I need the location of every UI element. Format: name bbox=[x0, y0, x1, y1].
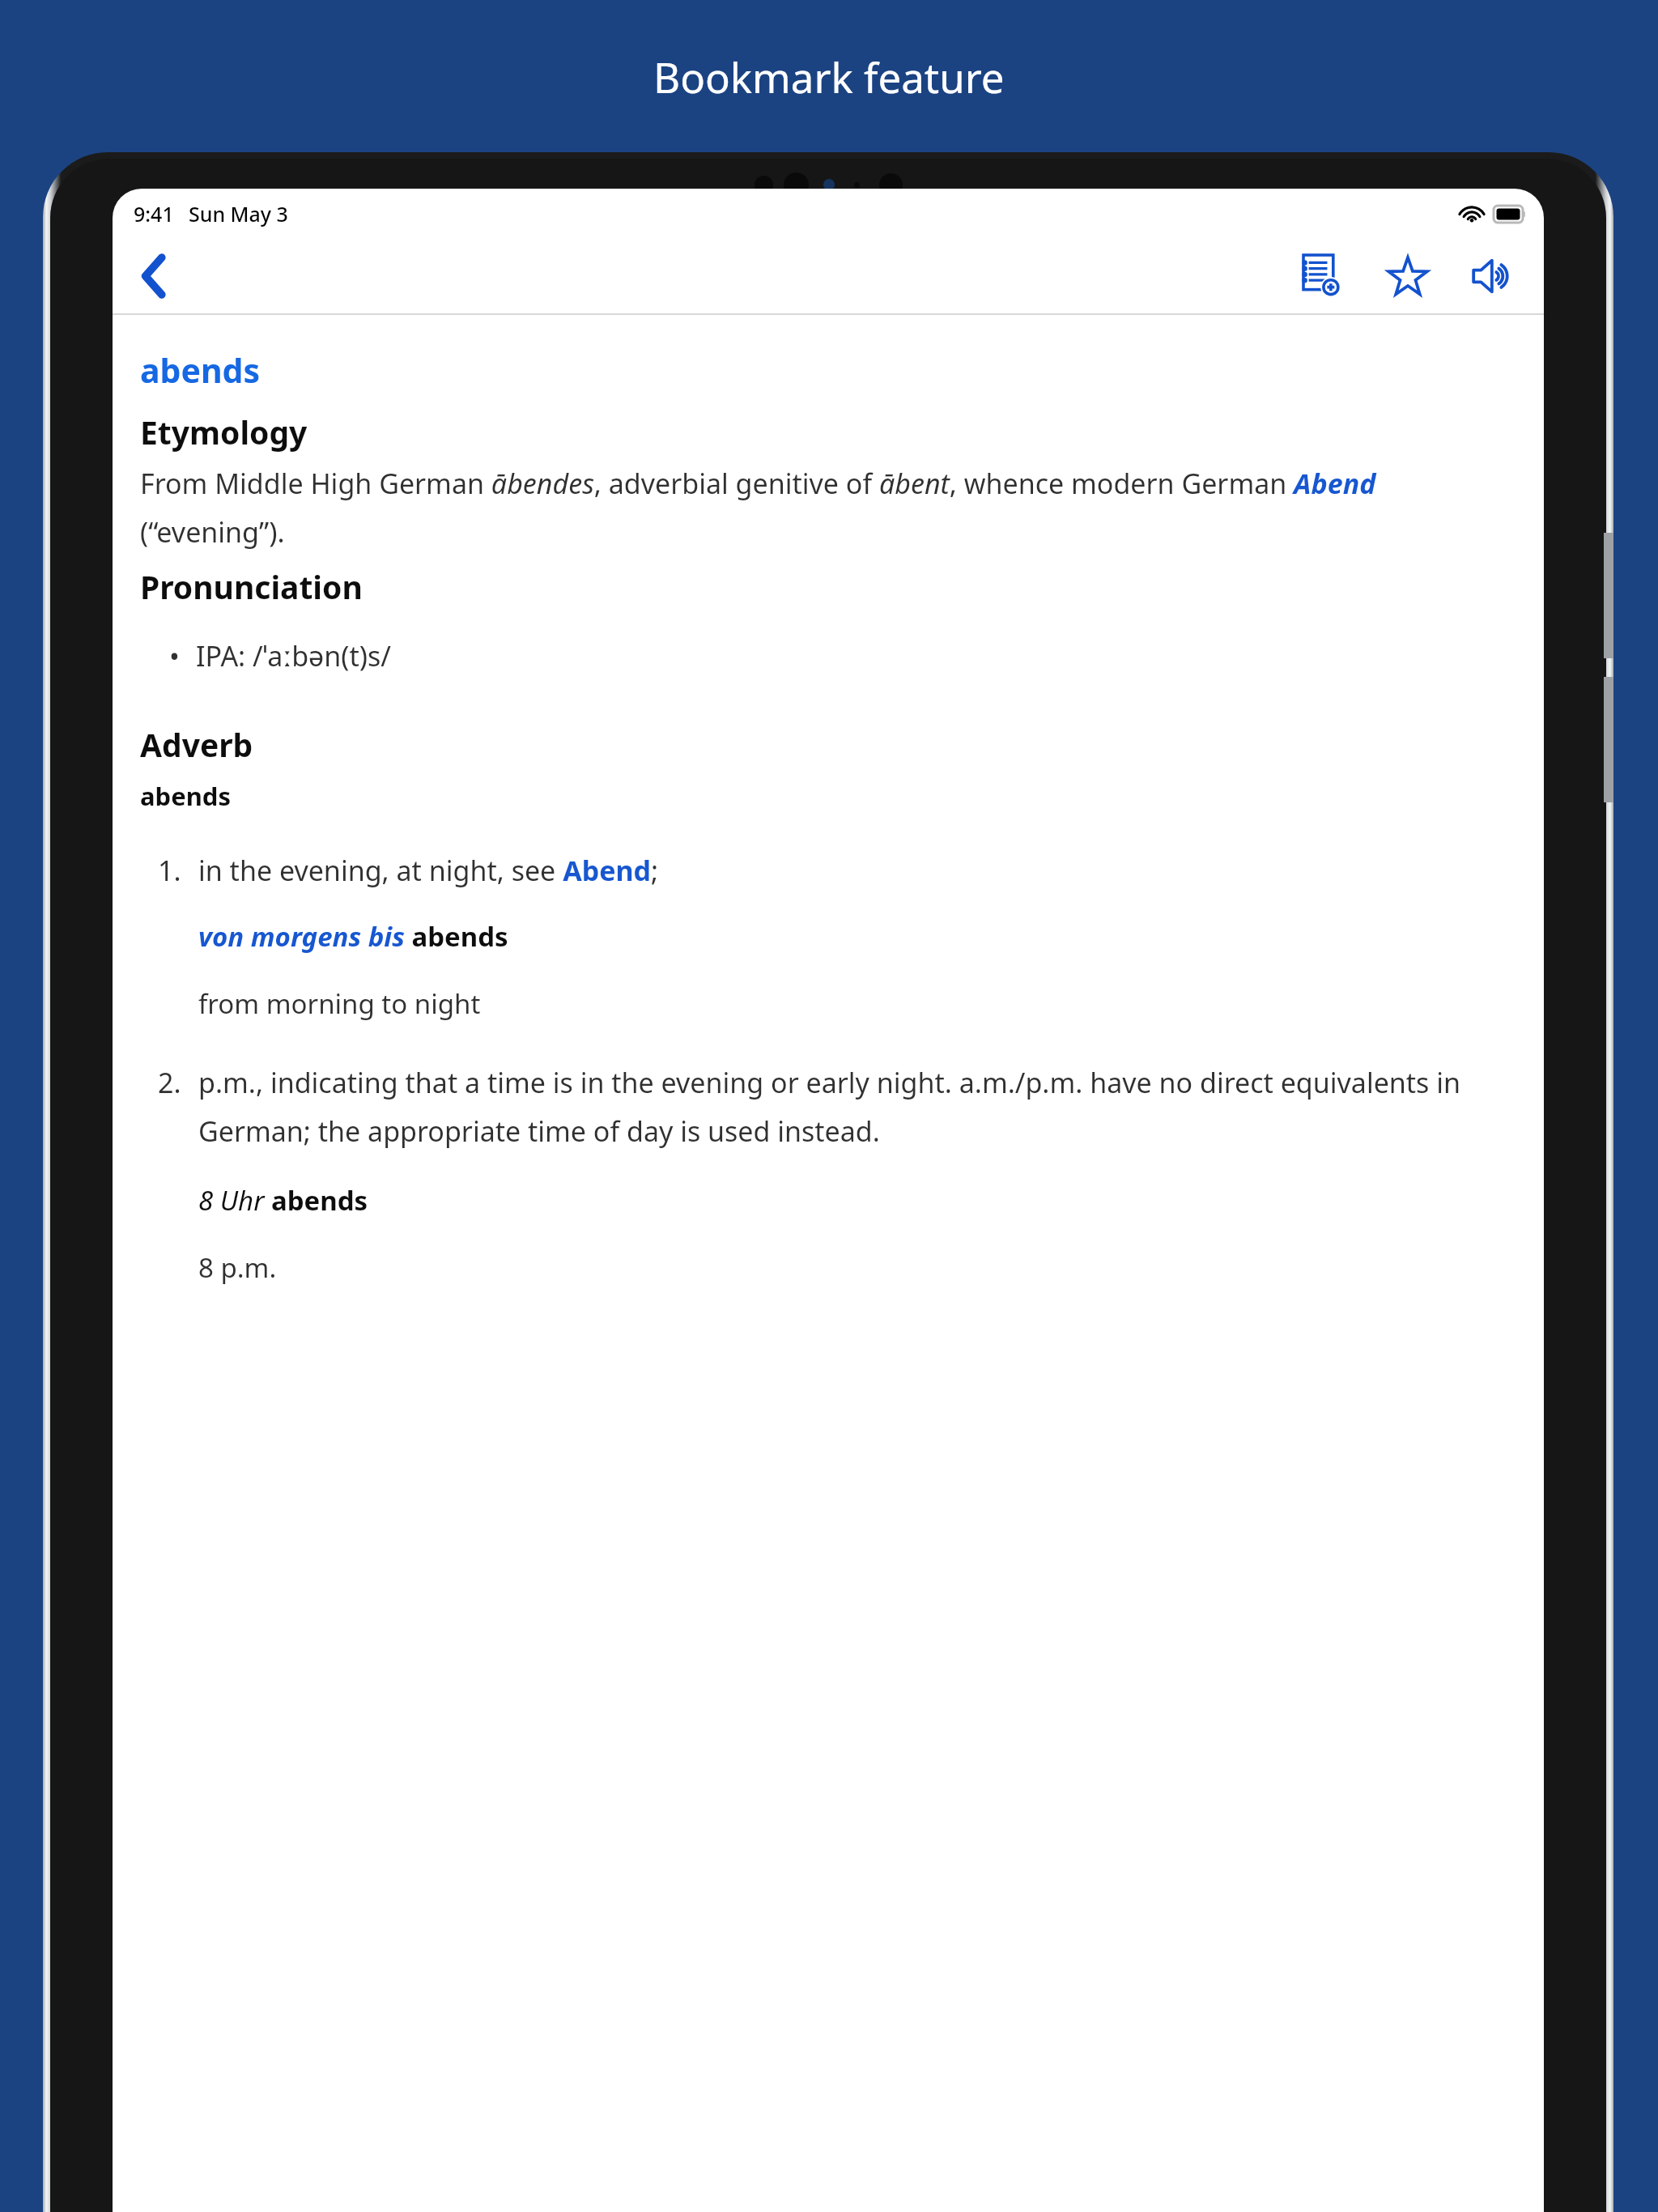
staticText: p.m., indicating that a time is in the e… bbox=[198, 1064, 1516, 1150]
staticText: 8 Uhr abends bbox=[198, 1182, 368, 1219]
staticText: IPA: /ˈaːbən(t)s/ bbox=[196, 637, 391, 674]
staticText: in the evening, at night, see Abend; bbox=[198, 852, 659, 889]
button[interactable]: Bookmark bbox=[1374, 242, 1442, 310]
staticText: 1. bbox=[158, 852, 181, 889]
staticText: Etymology bbox=[140, 410, 308, 453]
staticText: Pronunciation bbox=[140, 565, 363, 608]
staticText: von morgens bis abends bbox=[198, 918, 508, 955]
button[interactable]: Add to list bbox=[1288, 242, 1356, 310]
staticText: from morning to night bbox=[198, 985, 481, 1022]
staticText: • bbox=[169, 637, 180, 674]
button[interactable]: abends bbox=[140, 347, 261, 393]
staticText: 2. bbox=[158, 1064, 181, 1101]
staticText: From Middle High German ābendes, adverbi… bbox=[140, 465, 1516, 551]
button[interactable]: Back bbox=[119, 241, 189, 311]
staticText: abends bbox=[140, 779, 231, 813]
staticText: 8 p.m. bbox=[198, 1249, 277, 1286]
staticText: Bookmark feature bbox=[653, 49, 1005, 104]
button[interactable]: Pronounce bbox=[1460, 242, 1528, 310]
staticText: 9:41 bbox=[134, 200, 174, 228]
staticText: Adverb bbox=[140, 723, 253, 766]
staticText: Sun May 3 bbox=[189, 200, 288, 228]
